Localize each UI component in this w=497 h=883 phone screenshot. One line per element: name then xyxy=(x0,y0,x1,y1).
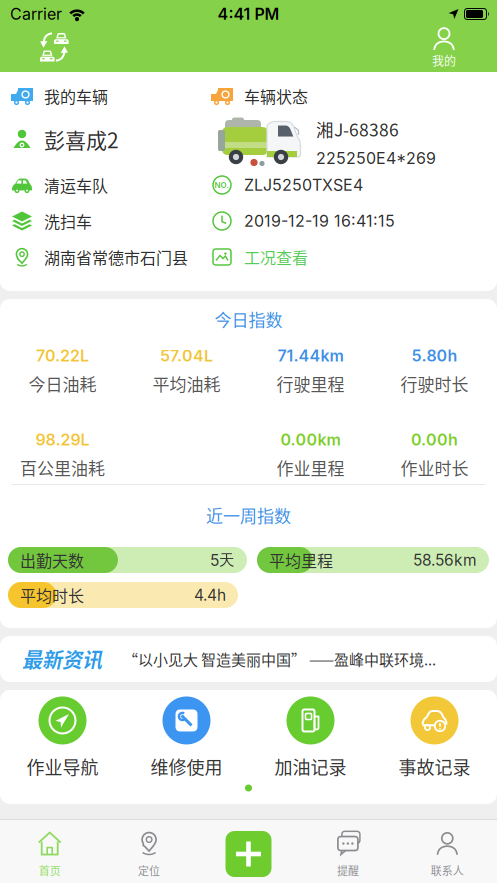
staticText: 湘J-68386 xyxy=(316,116,399,141)
button[interactable]: 提醒 xyxy=(298,825,398,883)
staticText: 车辆状态 xyxy=(244,84,308,108)
staticText: 今日指数 xyxy=(214,307,282,331)
button[interactable]: 定位 xyxy=(99,825,199,883)
staticText: 出勤天数 xyxy=(20,548,84,572)
button[interactable]: 最新资讯 xyxy=(0,636,497,682)
staticText: 加油记录 xyxy=(274,753,346,780)
staticText: 58.56km xyxy=(413,551,477,569)
staticText: 71.44km xyxy=(277,346,343,365)
staticText: 湖南省常德市石门县 xyxy=(44,245,188,269)
staticText: 70.22L xyxy=(36,346,89,365)
staticText: 维修使用 xyxy=(150,753,222,780)
staticText: 4:41 PM xyxy=(217,4,279,24)
staticText: 近一周指数 xyxy=(206,503,291,527)
staticText: 平均里程 xyxy=(269,548,333,572)
staticText: ZLJ5250TXSE4 xyxy=(244,175,363,195)
staticText: 225250E4*269 xyxy=(316,148,436,168)
button[interactable]: 事故记录 xyxy=(372,696,496,780)
staticText: 首页 xyxy=(39,862,61,878)
staticText: 作业时长 xyxy=(400,455,468,480)
staticText: 百公里油耗 xyxy=(20,455,105,480)
staticText: 4.4h xyxy=(194,586,226,604)
staticText: 98.29L xyxy=(35,430,89,449)
button[interactable]: 加油记录 xyxy=(248,696,372,780)
staticText: 57.04L xyxy=(160,346,213,365)
staticText: 0.00km xyxy=(280,430,340,449)
button[interactable]: 车辆状态 xyxy=(210,84,450,108)
staticText: 5天 xyxy=(210,550,235,570)
staticText: 联系人 xyxy=(431,862,464,878)
button[interactable]: 联系人 xyxy=(398,825,497,883)
staticText: 彭喜成2 xyxy=(44,124,119,154)
staticText: 提醒 xyxy=(337,862,359,878)
staticText: 我的 xyxy=(432,52,456,69)
staticText: 事故记录 xyxy=(398,753,470,780)
staticText: 定位 xyxy=(138,862,160,878)
staticText: 今日油耗 xyxy=(28,371,96,396)
button[interactable]: 添加 xyxy=(199,825,298,883)
staticText: 平均时长 xyxy=(20,583,84,607)
staticText: 平均油耗 xyxy=(152,371,220,396)
staticText: 2019-12-19 16:41:15 xyxy=(244,211,395,231)
staticText: 5.80h xyxy=(411,346,457,365)
staticText: Carrier xyxy=(10,4,62,24)
staticText: 工况查看 xyxy=(244,245,308,269)
staticText: 作业里程 xyxy=(276,455,344,480)
staticText: 行驶时长 xyxy=(400,371,468,396)
button[interactable]: 切换车辆 xyxy=(38,31,69,62)
staticText: 0.00h xyxy=(411,430,458,449)
button[interactable]: 我的车辆 xyxy=(10,84,250,108)
staticText: 行驶里程 xyxy=(276,371,344,396)
button[interactable]: 我的 xyxy=(432,27,456,69)
staticText: 最新资讯 xyxy=(22,644,102,673)
staticText: 作业导航 xyxy=(26,753,98,780)
staticText: 洗扫车 xyxy=(44,209,92,233)
button[interactable]: 工况查看 xyxy=(210,245,450,269)
staticText: 我的车辆 xyxy=(44,84,108,108)
button[interactable]: 维修使用 xyxy=(124,696,248,780)
button[interactable]: 首页 xyxy=(0,825,99,883)
staticText: 清运车队 xyxy=(44,173,108,197)
staticText: NO. xyxy=(214,180,229,190)
button[interactable]: 作业导航 xyxy=(0,696,124,780)
staticText: “以小见大 智造美丽中国” ——盈峰中联环境... xyxy=(123,648,436,670)
